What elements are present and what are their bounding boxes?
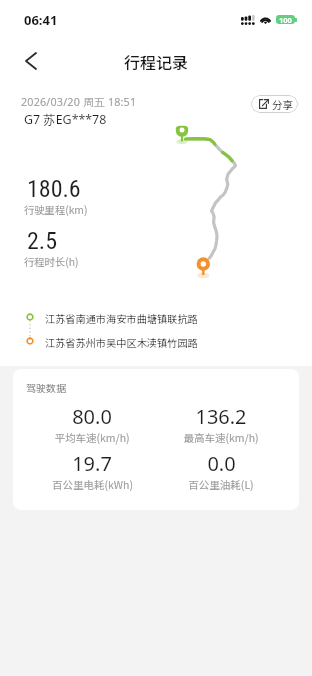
staticText: 0.0: [207, 450, 236, 477]
staticText: 行程记录: [124, 50, 189, 73]
staticText: 平均车速(km/h): [54, 430, 130, 445]
staticText: 136.2: [195, 403, 247, 430]
staticText: 分享: [272, 97, 293, 112]
staticText: 最高车速(km/h): [183, 430, 259, 445]
staticText: 百公里油耗(L): [188, 477, 254, 492]
button[interactable]: 分享: [251, 95, 298, 113]
staticText: 江苏省苏州市吴中区木渎镇竹园路: [45, 335, 198, 350]
staticText: 80.0: [72, 403, 112, 430]
staticText: G7 苏EG***78: [24, 111, 107, 128]
staticText: 行驶里程(km): [24, 202, 88, 217]
staticText: 2026/03/20 周五 18:51: [21, 94, 137, 109]
staticText: 驾驶数据: [26, 380, 66, 394]
staticText: 180.6: [27, 175, 81, 203]
staticText: 100: [279, 15, 292, 24]
staticText: 2.5: [27, 227, 58, 255]
button[interactable]: Back: [14, 44, 48, 78]
staticText: 江苏省南通市海安市曲塘镇联抗路: [45, 311, 198, 326]
staticText: 19.7: [72, 450, 112, 477]
staticText: 行程时长(h): [24, 254, 79, 269]
staticText: 百公里电耗(kWh): [52, 477, 133, 492]
staticText: 06:41: [24, 11, 58, 29]
